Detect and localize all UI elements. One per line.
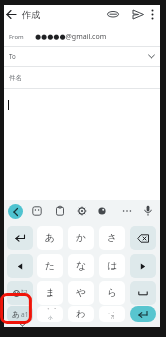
button[interactable] [148, 8, 157, 21]
button[interactable]: ゛゜ [37, 306, 63, 322]
staticText: あ [12, 309, 21, 319]
button[interactable] [122, 206, 132, 216]
button[interactable] [7, 254, 33, 278]
button[interactable]: 記 [7, 281, 33, 305]
staticText: 記 [21, 289, 28, 297]
button[interactable]: た [37, 254, 63, 278]
button[interactable] [130, 306, 156, 322]
staticText: 、。 ?! [108, 309, 117, 320]
staticText: た [45, 260, 56, 272]
staticText: ら [107, 287, 118, 299]
button[interactable]: 、。 ?! [99, 306, 125, 322]
staticText: ●●●●●@gmail.com [35, 32, 107, 42]
staticText: や [76, 287, 87, 299]
button[interactable]: な [68, 254, 94, 278]
staticText: あ [45, 232, 56, 244]
button[interactable] [130, 254, 156, 278]
button[interactable]: ら [99, 281, 125, 305]
button[interactable] [8, 204, 23, 219]
staticText: 作成 [22, 9, 41, 21]
button[interactable]: From [4, 27, 159, 46]
button[interactable] [77, 206, 87, 216]
button[interactable] [55, 206, 65, 216]
button[interactable]: To [4, 46, 159, 66]
staticText: To [9, 52, 16, 60]
button[interactable] [16, 322, 29, 327]
button[interactable]: 件名 [4, 67, 159, 88]
button[interactable] [7, 226, 33, 250]
button[interactable]: あ [37, 226, 63, 250]
button[interactable] [132, 9, 145, 20]
staticText: 件名 [9, 74, 22, 82]
button[interactable] [97, 206, 107, 216]
button[interactable] [130, 226, 156, 250]
staticText: 小 [48, 315, 53, 321]
button[interactable] [130, 281, 156, 305]
button[interactable] [32, 206, 42, 216]
staticText: ゛゜ [43, 307, 57, 315]
staticText: か [76, 232, 87, 244]
button[interactable]: ま [37, 281, 63, 305]
button[interactable]: は [99, 254, 125, 278]
staticText: な [76, 260, 87, 272]
button[interactable] [143, 205, 153, 218]
staticText: From [9, 33, 24, 41]
button[interactable]: や [68, 281, 94, 305]
button[interactable]: さ [99, 226, 125, 250]
button[interactable]: わ [68, 306, 94, 322]
staticText: a1 [21, 310, 29, 319]
button[interactable]: あ [7, 306, 33, 322]
staticText: さ [107, 232, 118, 244]
staticText: ま [45, 287, 56, 299]
staticText: わ [76, 308, 86, 320]
button[interactable] [106, 9, 120, 20]
staticText: は [107, 260, 118, 272]
button[interactable] [5, 8, 19, 21]
button[interactable]: か [68, 226, 94, 250]
